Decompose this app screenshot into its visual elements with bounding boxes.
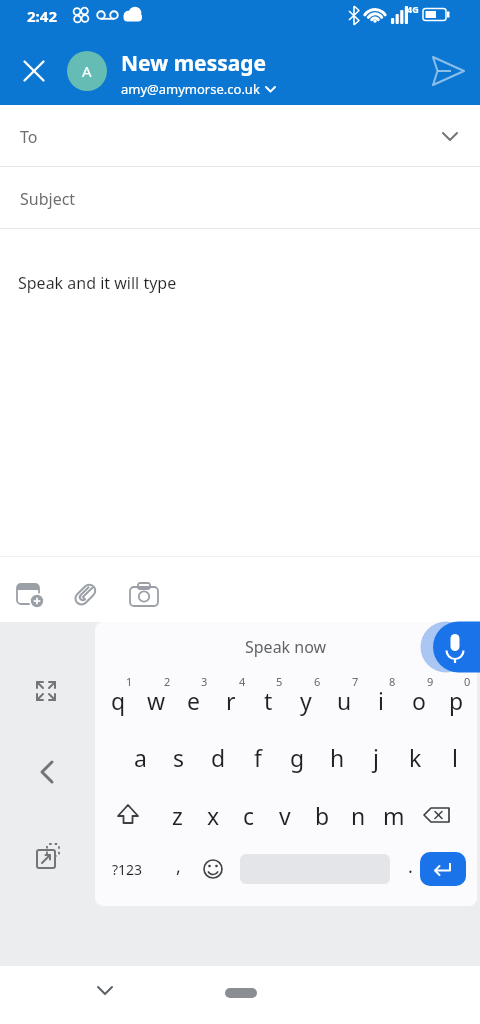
staticText: n xyxy=(351,800,366,831)
button[interactable]: o xyxy=(400,678,438,722)
button[interactable]: , xyxy=(159,844,197,888)
button[interactable]: e xyxy=(174,678,212,722)
button[interactable] xyxy=(418,795,458,835)
button[interactable]: p xyxy=(437,678,475,722)
staticText: y xyxy=(300,685,312,716)
button[interactable]: g xyxy=(278,735,316,779)
button[interactable] xyxy=(420,852,466,886)
button[interactable]: n xyxy=(339,793,377,837)
staticText: h xyxy=(330,742,345,773)
staticText: 7 xyxy=(352,674,359,689)
button[interactable]: i xyxy=(362,678,400,722)
staticText: ?123 xyxy=(112,860,143,879)
button[interactable]: z xyxy=(158,793,196,837)
staticText: t xyxy=(264,685,273,716)
button[interactable]: b xyxy=(303,793,341,837)
button[interactable]: v xyxy=(266,793,304,837)
button[interactable] xyxy=(29,674,63,708)
staticText: 4 xyxy=(239,674,246,689)
staticText: l xyxy=(452,742,458,773)
button[interactable]: A xyxy=(67,51,107,91)
button[interactable]: m xyxy=(375,793,413,837)
button[interactable]: a xyxy=(121,735,159,779)
staticText: z xyxy=(172,800,183,831)
staticText: f xyxy=(254,742,262,773)
staticText: To xyxy=(20,126,38,148)
button[interactable] xyxy=(90,976,120,1004)
button[interactable]: t xyxy=(249,678,287,722)
button[interactable]: To xyxy=(0,105,480,166)
staticText: 8 xyxy=(389,674,396,689)
staticText: 3 xyxy=(201,674,208,689)
staticText: Subject xyxy=(20,188,76,210)
staticText: New message xyxy=(121,49,267,78)
button[interactable] xyxy=(412,616,480,678)
staticText: u xyxy=(337,685,352,716)
button[interactable] xyxy=(108,795,148,835)
staticText: w xyxy=(147,685,166,716)
staticText: r xyxy=(226,685,236,716)
staticText: 2 xyxy=(164,674,171,689)
staticText: 6 xyxy=(314,674,321,689)
staticText: Speak now xyxy=(245,636,327,658)
staticText: s xyxy=(173,742,185,773)
staticText: o xyxy=(412,685,426,716)
button[interactable] xyxy=(14,51,54,91)
button[interactable] xyxy=(126,578,162,612)
staticText: 9 xyxy=(427,674,434,689)
button[interactable]: ?123 xyxy=(103,849,151,889)
button[interactable]: l xyxy=(436,735,474,779)
staticText: , xyxy=(176,854,181,879)
button[interactable] xyxy=(225,988,257,998)
button[interactable]: c xyxy=(230,793,268,837)
button[interactable]: y xyxy=(287,678,325,722)
staticText: b xyxy=(315,800,330,831)
button[interactable]: q xyxy=(99,678,137,722)
button[interactable]: . xyxy=(391,844,429,888)
staticText: Speak and it will type xyxy=(18,272,177,294)
button[interactable]: j xyxy=(357,735,395,779)
button[interactable]: f xyxy=(239,735,277,779)
button[interactable]: h xyxy=(318,735,356,779)
button[interactable]: d xyxy=(199,735,237,779)
button[interactable]: amy@amymorse.co.uk xyxy=(121,80,280,98)
button[interactable]: u xyxy=(325,678,363,722)
button[interactable]: r xyxy=(212,678,250,722)
staticText: A xyxy=(82,61,92,81)
staticText: m xyxy=(383,800,405,831)
button[interactable] xyxy=(426,53,470,91)
staticText: a xyxy=(134,742,147,773)
staticText: e xyxy=(187,685,200,716)
button[interactable]: Subject xyxy=(0,167,480,228)
button[interactable]: s xyxy=(160,735,198,779)
staticText: 4G xyxy=(407,3,419,15)
staticText: . xyxy=(408,854,413,879)
staticText: k xyxy=(409,742,422,773)
staticText: d xyxy=(211,742,226,773)
staticText: amy@amymorse.co.uk xyxy=(121,80,260,98)
button[interactable] xyxy=(12,578,48,612)
staticText: 2:42 xyxy=(27,6,57,26)
button[interactable] xyxy=(195,851,231,887)
staticText: q xyxy=(111,685,126,716)
button[interactable]: k xyxy=(396,735,434,779)
staticText: p xyxy=(449,685,464,716)
button[interactable]: x xyxy=(194,793,232,837)
staticText: 0 xyxy=(464,674,471,689)
button[interactable]: w xyxy=(137,678,175,722)
staticText: v xyxy=(279,800,291,831)
staticText: g xyxy=(290,742,305,773)
staticText: 1 xyxy=(126,674,133,689)
staticText: i xyxy=(378,685,384,716)
staticText: 5 xyxy=(276,674,283,689)
staticText: c xyxy=(243,800,255,831)
staticText: j xyxy=(373,742,379,773)
button[interactable] xyxy=(33,758,61,788)
button[interactable]: Speak now xyxy=(95,622,477,672)
staticText: x xyxy=(207,800,220,831)
button[interactable] xyxy=(68,578,102,612)
button[interactable] xyxy=(33,842,63,872)
